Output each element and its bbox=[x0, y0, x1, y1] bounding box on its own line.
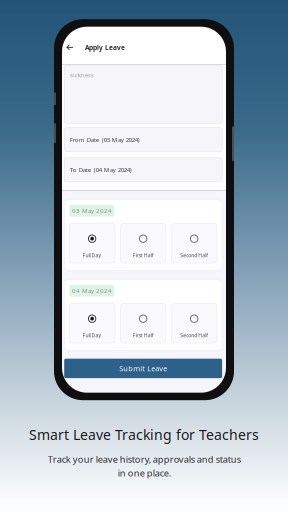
button[interactable]: From Date bbox=[64, 128, 222, 152]
staticText: Full Day bbox=[83, 252, 102, 258]
staticText: (03 May 2024) bbox=[102, 136, 140, 144]
button[interactable]: Full Day bbox=[69, 303, 115, 343]
staticText: Submit Leave bbox=[119, 363, 167, 373]
staticText: Smart Leave Tracking for Teachers bbox=[29, 425, 259, 444]
staticText: Track your leave history, approvals and … bbox=[47, 453, 240, 479]
staticText: sickness bbox=[70, 71, 94, 79]
staticText: Full Day bbox=[83, 332, 102, 338]
staticText: First Half bbox=[133, 252, 154, 258]
button[interactable]: First Half bbox=[120, 303, 166, 343]
button[interactable]: Second Half bbox=[171, 303, 217, 343]
staticText: (04 May 2024) bbox=[94, 166, 132, 174]
staticText: Second Half bbox=[180, 252, 208, 258]
button[interactable]: Full Day bbox=[69, 223, 115, 263]
staticText: To Date bbox=[70, 166, 91, 174]
staticText: Apply Leave bbox=[85, 43, 125, 52]
button[interactable]: To Date bbox=[64, 158, 222, 182]
staticText: From Date bbox=[70, 136, 99, 144]
staticText: First Half bbox=[133, 332, 154, 338]
button[interactable]: First Half bbox=[120, 223, 166, 263]
staticText: 04 May 2024 bbox=[72, 287, 112, 295]
staticText: Second Half bbox=[180, 332, 208, 338]
button[interactable]: Second Half bbox=[171, 223, 217, 263]
staticText: 03 May 2024 bbox=[72, 207, 112, 215]
button[interactable]: Submit Leave bbox=[64, 359, 222, 378]
button[interactable]: Back bbox=[64, 42, 75, 53]
